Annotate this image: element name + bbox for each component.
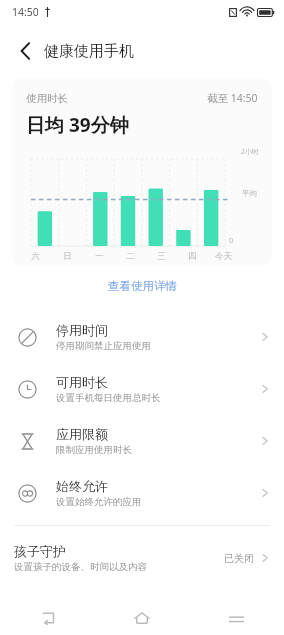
- staticText: 2小时: [241, 147, 260, 157]
- staticText: 日均: [26, 112, 69, 138]
- button[interactable]: 返回: [8, 34, 42, 68]
- button[interactable]: 停用时间: [0, 311, 284, 363]
- button[interactable]: 主屏幕: [94, 601, 189, 635]
- staticText: 可用时长: [56, 374, 108, 390]
- staticText: 设置始终允许的应用: [56, 496, 142, 508]
- button[interactable]: 返回: [0, 601, 94, 635]
- staticText: 使用时长: [26, 92, 68, 105]
- staticText: 六: [31, 251, 40, 262]
- staticText: 设置孩子的设备、时间以及内容: [14, 561, 147, 573]
- staticText: 二: [126, 251, 135, 262]
- staticText: 孩子守护: [14, 543, 66, 559]
- staticText: 已关闭: [224, 552, 254, 565]
- staticText: 停用时间: [56, 322, 108, 338]
- button[interactable]: 查看使用详情: [0, 274, 284, 298]
- staticText: 截至 14:50: [207, 91, 258, 105]
- button[interactable]: 最近任务: [189, 601, 284, 635]
- staticText: 平均: [242, 189, 257, 198]
- staticText: 今天: [215, 251, 232, 262]
- button[interactable]: 始终允许: [0, 467, 284, 519]
- button[interactable]: 可用时长: [0, 363, 284, 415]
- staticText: 查看使用详情: [108, 279, 177, 293]
- button[interactable]: 应用限额: [0, 415, 284, 467]
- staticText: 四: [188, 251, 197, 262]
- staticText: 三: [157, 251, 166, 262]
- staticText: 健康使用手机: [44, 42, 134, 61]
- staticText: 39分钟: [69, 112, 129, 138]
- staticText: 限制应用使用时长: [56, 444, 132, 456]
- staticText: 14:50: [12, 5, 39, 19]
- staticText: 一: [95, 251, 104, 262]
- staticText: 0: [229, 235, 234, 245]
- staticText: 设置手机每日使用总时长: [56, 392, 161, 404]
- button[interactable]: 孩子守护: [0, 536, 284, 580]
- staticText: 停用期间禁止应用使用: [56, 340, 151, 352]
- staticText: 应用限额: [56, 426, 108, 442]
- staticText: 日: [63, 251, 72, 262]
- button[interactable]: 使用时长: [12, 78, 272, 266]
- staticText: 始终允许: [56, 478, 108, 494]
